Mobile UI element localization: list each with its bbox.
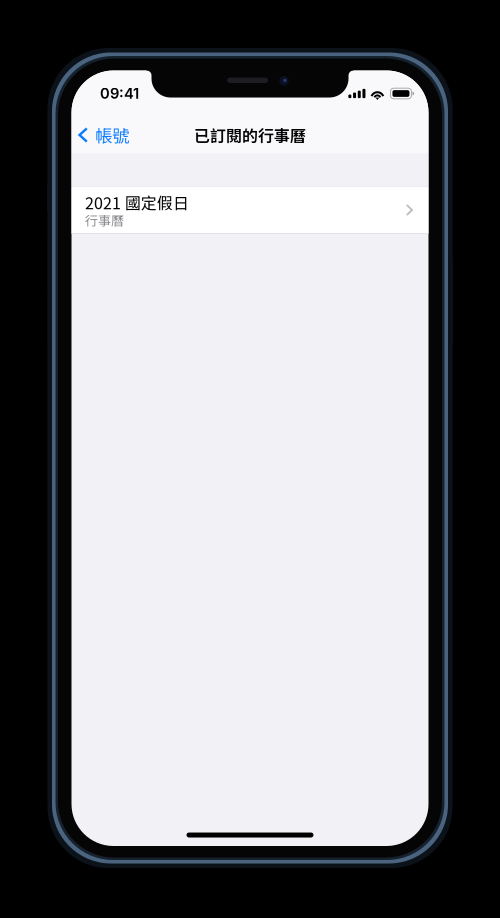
button[interactable]: 2021 國定假日 bbox=[71, 186, 428, 233]
staticText: 帳號 bbox=[95, 122, 129, 148]
button[interactable]: 帳號 bbox=[71, 116, 139, 153]
staticText: 2021 國定假日 bbox=[85, 191, 189, 214]
staticText: 已訂閱的行事曆 bbox=[194, 123, 306, 147]
staticText: 行事曆 bbox=[85, 210, 124, 229]
staticText: 09:41 bbox=[100, 85, 139, 102]
